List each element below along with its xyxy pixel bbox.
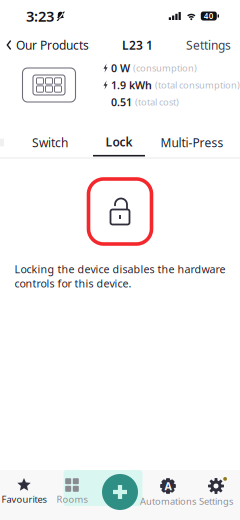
staticText: 40: [204, 11, 214, 21]
staticText: Multi-Press: [160, 134, 223, 150]
button[interactable]: Add: [102, 474, 138, 510]
staticText: Locking the device disables the hardware…: [14, 262, 225, 290]
staticText: L23 1: [122, 37, 153, 53]
staticText: 3:23: [26, 6, 54, 26]
button[interactable]: Settings: [188, 470, 240, 520]
staticText: Automations: [140, 495, 196, 507]
button[interactable]: A: [140, 470, 196, 520]
staticText: Settings: [186, 37, 231, 53]
staticText: 0.51: [111, 95, 132, 109]
button[interactable]: Favourites: [0, 470, 52, 520]
staticText: 1.9 kWh: [111, 78, 152, 92]
staticText: A: [164, 479, 171, 493]
staticText: (consumption): [133, 62, 197, 74]
button[interactable]: Settings: [186, 32, 240, 58]
staticText: Switch: [32, 134, 68, 150]
staticText: (total consumption): [155, 79, 240, 91]
staticText: Our Products: [16, 37, 89, 53]
staticText: Favourites: [1, 493, 46, 505]
button[interactable]: Our Products: [0, 32, 89, 58]
staticText: 0 W: [111, 61, 130, 75]
button[interactable]: Lock device: [88, 179, 151, 244]
button[interactable]: Rooms: [44, 470, 100, 520]
staticText: Lock: [105, 134, 132, 150]
button[interactable]: Switch: [14, 129, 86, 155]
staticText: Settings: [199, 495, 233, 507]
staticText: Rooms: [56, 493, 87, 505]
button[interactable]: Lock: [83, 130, 155, 156]
button[interactable]: Multi-Press: [152, 129, 232, 155]
staticText: (total cost): [135, 96, 179, 108]
